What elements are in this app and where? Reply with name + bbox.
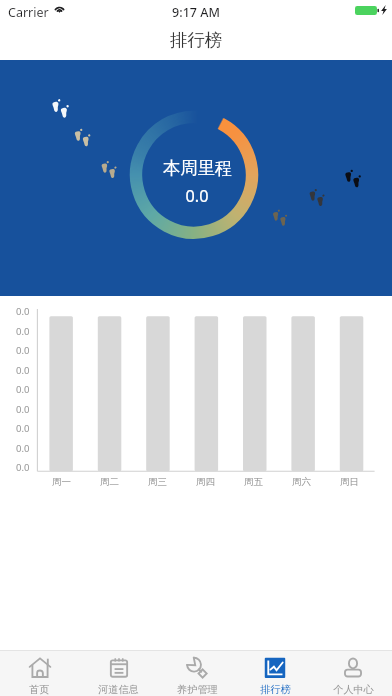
staticText: 周五 — [244, 476, 263, 488]
staticText: Carrier — [8, 4, 49, 20]
staticText: 周四 — [196, 476, 215, 488]
staticText: 首页 — [29, 683, 50, 696]
staticText: 本周里程 — [3, 157, 392, 179]
staticText: 周日 — [340, 476, 359, 488]
staticText: 0.0 — [16, 403, 30, 416]
staticText: 排行榜 — [260, 683, 291, 696]
staticText: 0.0 — [16, 364, 30, 377]
staticText: 0.0 — [16, 442, 30, 455]
staticText: 0.0 — [2, 185, 392, 207]
staticText: 0.0 — [16, 344, 30, 357]
staticText: 0.0 — [16, 461, 30, 474]
staticText: 周一 — [52, 476, 71, 488]
staticText: 周二 — [100, 476, 119, 488]
button[interactable]: 首页 — [0, 651, 79, 696]
staticText: 0.0 — [16, 383, 30, 396]
staticText: 0.0 — [16, 422, 30, 435]
button[interactable]: 河道信息 — [79, 651, 158, 696]
staticText: 排行榜 — [170, 29, 223, 51]
staticText: 9:17 AM — [0, 4, 392, 20]
button[interactable]: 个人中心 — [314, 651, 392, 696]
staticText: 0.0 — [16, 325, 30, 338]
staticText: 周三 — [148, 476, 167, 488]
staticText: 个人中心 — [333, 683, 374, 696]
staticText: 养护管理 — [177, 683, 218, 696]
staticText: 河道信息 — [98, 683, 139, 696]
staticText: 周六 — [292, 476, 311, 488]
button[interactable]: 排行榜 — [236, 651, 314, 696]
button[interactable]: 养护管理 — [158, 651, 236, 696]
staticText: 0.0 — [16, 305, 30, 318]
